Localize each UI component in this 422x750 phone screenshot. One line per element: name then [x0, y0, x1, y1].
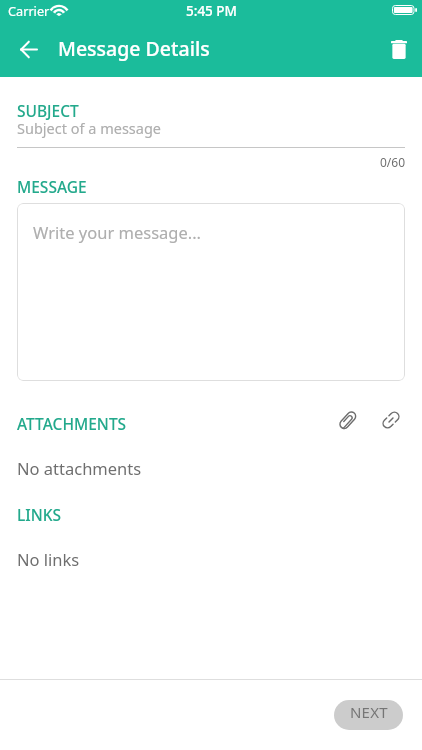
- staticText: MESSAGE: [17, 176, 87, 197]
- button[interactable]: Delete: [381, 31, 417, 67]
- staticText: Message Details: [58, 35, 210, 62]
- staticText: ATTACHMENTS: [17, 413, 127, 434]
- staticText: LINKS: [17, 504, 62, 525]
- staticText: SUBJECT: [17, 100, 79, 121]
- staticText: NEXT: [350, 702, 388, 722]
- staticText: Carrier: [8, 2, 50, 19]
- staticText: 0/60: [17, 154, 405, 170]
- button[interactable]: Add attachment: [332, 404, 364, 436]
- staticText: 5:45 PM: [186, 2, 237, 20]
- button[interactable]: Add link: [375, 404, 407, 436]
- staticText: No attachments: [17, 457, 142, 479]
- button[interactable]: Back: [11, 31, 47, 67]
- button[interactable]: NEXT: [334, 700, 403, 730]
- button[interactable]: Write your message...: [17, 203, 405, 381]
- staticText: No links: [17, 548, 80, 570]
- staticText: Subject of a message: [17, 118, 162, 138]
- staticText: Write your message...: [33, 221, 202, 243]
